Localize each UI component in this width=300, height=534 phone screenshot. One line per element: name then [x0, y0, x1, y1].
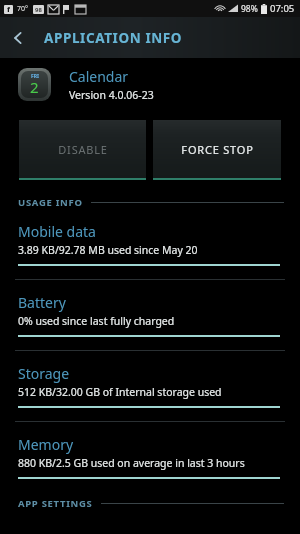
staticText: Battery [18, 293, 66, 312]
button[interactable]: Back [0, 20, 36, 56]
staticText: Storage [18, 364, 70, 383]
button[interactable]: Memory [0, 422, 300, 479]
staticText: FRI [31, 73, 39, 80]
staticText: DISABLE [58, 142, 108, 157]
staticText: 70° [17, 4, 29, 14]
button[interactable]: FORCE STOP [153, 120, 281, 180]
staticText: 0% used since last fully charged [18, 314, 175, 328]
staticText: Version 4.0.06-23 [69, 88, 154, 102]
button[interactable]: DISABLE [19, 120, 146, 180]
button[interactable]: Storage [0, 351, 300, 422]
staticText: 512 KB/32.00 GB of Internal storage used [18, 385, 222, 399]
button[interactable]: Mobile data [0, 209, 300, 280]
staticText: 3.89 KB/92.78 MB used since May 20 [18, 243, 198, 257]
staticText: Mobile data [18, 222, 96, 241]
staticText: APPLICATION INFO [44, 29, 183, 47]
button[interactable]: Battery [0, 280, 300, 351]
staticText: APP SETTINGS [18, 497, 93, 510]
staticText: Memory [18, 435, 74, 454]
staticText: f [7, 5, 10, 14]
staticText: FORCE STOP [181, 142, 254, 157]
staticText: USAGE INFO [18, 196, 83, 209]
staticText: 07:05 [270, 2, 295, 15]
staticText: Calendar [69, 67, 129, 86]
staticText: 2 [30, 77, 39, 97]
staticText: 98 [35, 6, 42, 14]
staticText: 98% [241, 3, 258, 15]
staticText: 880 KB/2.5 GB used on average in last 3 … [18, 456, 245, 470]
